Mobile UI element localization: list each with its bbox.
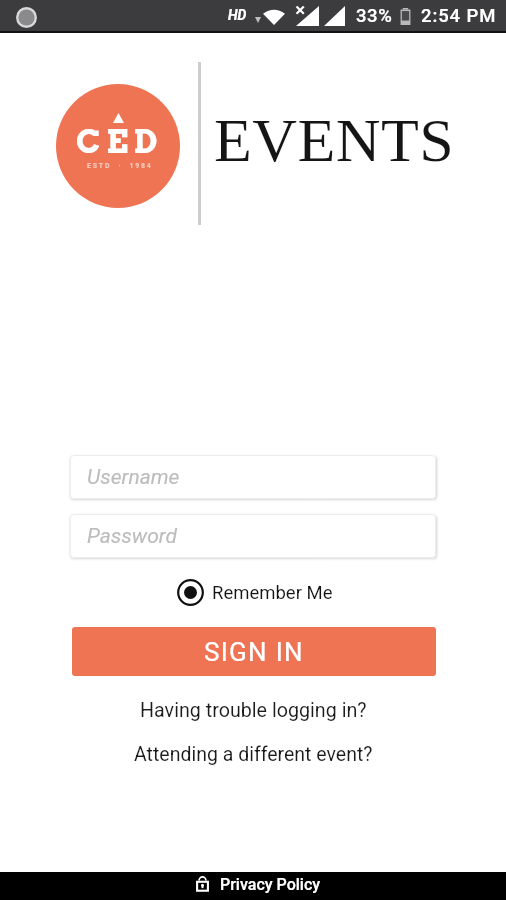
staticText: SIGN IN — [204, 637, 304, 667]
staticText: Remember Me — [212, 582, 333, 604]
staticText: Attending a different event? — [134, 743, 373, 766]
button[interactable]: Having trouble logging in? — [0, 699, 506, 722]
button[interactable]: Username — [70, 455, 436, 499]
other: Notification — [16, 7, 37, 28]
staticText: 33% — [356, 5, 393, 27]
button[interactable]: Attending a different event? — [0, 743, 506, 766]
staticText: Having trouble logging in? — [140, 699, 367, 722]
button[interactable]: Remember Me — [177, 579, 333, 606]
other: Privacy policy lock — [195, 876, 210, 892]
button[interactable]: Password — [70, 514, 436, 558]
staticText: Privacy Policy — [220, 875, 321, 894]
staticText: CED — [76, 122, 163, 161]
staticText: HD — [228, 7, 247, 23]
staticText: Username — [87, 465, 180, 490]
button[interactable]: Privacy policy lock — [0, 872, 506, 900]
staticText: EVENTS — [214, 106, 455, 175]
staticText: 2:54 PM — [421, 5, 497, 27]
staticText: Password — [87, 524, 177, 549]
staticText: ESTD · 1984 — [87, 162, 153, 170]
button[interactable]: SIGN IN — [72, 627, 436, 676]
